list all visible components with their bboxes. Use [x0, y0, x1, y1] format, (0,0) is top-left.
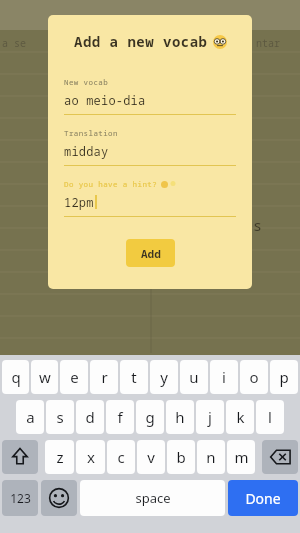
staticText: f	[117, 407, 123, 427]
button[interactable]: z	[45, 440, 74, 474]
button[interactable]: m	[227, 440, 255, 474]
button[interactable]: Emoji	[41, 480, 77, 516]
button[interactable]: x	[76, 440, 105, 474]
button[interactable]: h	[166, 400, 194, 434]
button[interactable]: r	[90, 360, 118, 394]
button[interactable]: y	[150, 360, 178, 394]
button[interactable]: Translation	[64, 128, 236, 166]
button[interactable]: Do you have a hint?	[64, 179, 236, 217]
staticText: b	[176, 447, 186, 467]
staticText: r	[101, 367, 108, 387]
staticText: 12pm	[64, 194, 94, 210]
staticText: k	[236, 407, 245, 427]
staticText: New vocab	[64, 77, 109, 87]
staticText: z	[56, 447, 64, 467]
staticText: Add	[141, 246, 161, 261]
button[interactable]: l	[256, 400, 284, 434]
staticText: p	[279, 367, 289, 387]
staticText: w	[39, 367, 51, 387]
button[interactable]: n	[197, 440, 225, 474]
button[interactable]: b	[167, 440, 195, 474]
button[interactable]: s	[46, 400, 74, 434]
staticText: u	[189, 367, 199, 387]
staticText: Translation	[64, 128, 118, 138]
staticText: l	[268, 407, 272, 427]
staticText: 123	[10, 490, 31, 506]
button[interactable]: Done	[228, 480, 298, 516]
button[interactable]: f	[106, 400, 134, 434]
button[interactable]: i	[210, 360, 238, 394]
staticText: ao meio-dia	[64, 92, 146, 108]
staticText: y	[160, 367, 168, 387]
staticText: q	[11, 367, 21, 387]
staticText: midday	[64, 143, 109, 159]
button[interactable]: a	[16, 400, 44, 434]
staticText: o	[249, 367, 259, 387]
staticText: Do you have a hint?	[64, 179, 158, 189]
staticText: c	[117, 447, 125, 467]
staticText: x	[87, 447, 95, 467]
staticText: t	[131, 367, 137, 387]
button[interactable]: j	[196, 400, 224, 434]
button[interactable]: Add	[126, 239, 175, 267]
staticText: a se	[2, 36, 26, 50]
button[interactable]: 123	[2, 480, 38, 516]
staticText: g	[145, 407, 155, 427]
button[interactable]: q	[2, 360, 29, 394]
staticText: s	[56, 407, 64, 427]
staticText: s	[253, 215, 263, 235]
button[interactable]: k	[226, 400, 254, 434]
staticText: e	[70, 367, 79, 387]
button[interactable]: space	[80, 480, 225, 516]
button[interactable]: c	[107, 440, 135, 474]
staticText: m	[234, 447, 249, 467]
staticText: i	[222, 367, 226, 387]
staticText: a	[26, 407, 35, 427]
button[interactable]: e	[60, 360, 88, 394]
button[interactable]: Backspace	[262, 440, 298, 474]
button[interactable]: t	[120, 360, 148, 394]
button[interactable]: Shift	[2, 440, 38, 474]
staticText: j	[208, 407, 212, 427]
button[interactable]: p	[270, 360, 298, 394]
button[interactable]: w	[31, 360, 58, 394]
button[interactable]: g	[136, 400, 164, 434]
staticText: n	[206, 447, 216, 467]
button[interactable]: New vocab	[64, 77, 236, 115]
button[interactable]: v	[137, 440, 165, 474]
staticText: v	[147, 447, 155, 467]
staticText: ntar	[256, 36, 280, 50]
staticText: d	[85, 407, 95, 427]
staticText: Add a new vocab	[74, 32, 208, 51]
button[interactable]: o	[240, 360, 268, 394]
staticText: space	[135, 489, 171, 507]
button[interactable]: u	[180, 360, 208, 394]
staticText: h	[175, 407, 185, 427]
staticText: Done	[245, 489, 281, 508]
button[interactable]: d	[76, 400, 104, 434]
